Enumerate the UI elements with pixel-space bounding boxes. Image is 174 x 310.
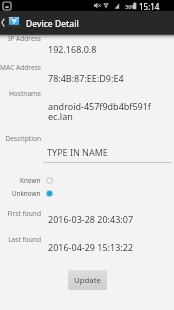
staticText: ec.lan: [48, 110, 73, 122]
staticText: First found: [0, 209, 41, 218]
staticText: MAC Address: [0, 63, 41, 72]
staticText: Known: [20, 176, 41, 185]
staticText: Device Detail: [26, 18, 79, 30]
staticText: Unknown: [12, 189, 41, 198]
staticText: 2016-04-29 15:13:22: [48, 241, 134, 253]
staticText: 15:14: [139, 1, 160, 12]
button[interactable]: Known: [0, 174, 56, 186]
staticText: Update: [74, 275, 101, 286]
staticText: ?: [9, 16, 19, 24]
staticText: 192.168.0.8: [48, 43, 97, 55]
button[interactable]: Update: [68, 270, 107, 290]
button[interactable]: TYPE IN NAME: [43, 145, 172, 164]
staticText: Last found: [0, 235, 41, 244]
staticText: 78:4B:87:EE:D9:E4: [48, 72, 124, 84]
staticText: TYPE IN NAME: [47, 146, 108, 158]
staticText: 36%: [125, 3, 136, 10]
staticText: IP Address: [0, 34, 41, 43]
staticText: 2016-03-28 20:43:07: [48, 213, 134, 225]
staticText: Description: [0, 134, 41, 143]
button[interactable]: Navigate up: [0, 11, 22, 34]
staticText: android-457f9db4bf591f: [48, 100, 151, 112]
staticText: Hostname: [0, 89, 41, 98]
button[interactable]: Unknown: [0, 187, 56, 199]
